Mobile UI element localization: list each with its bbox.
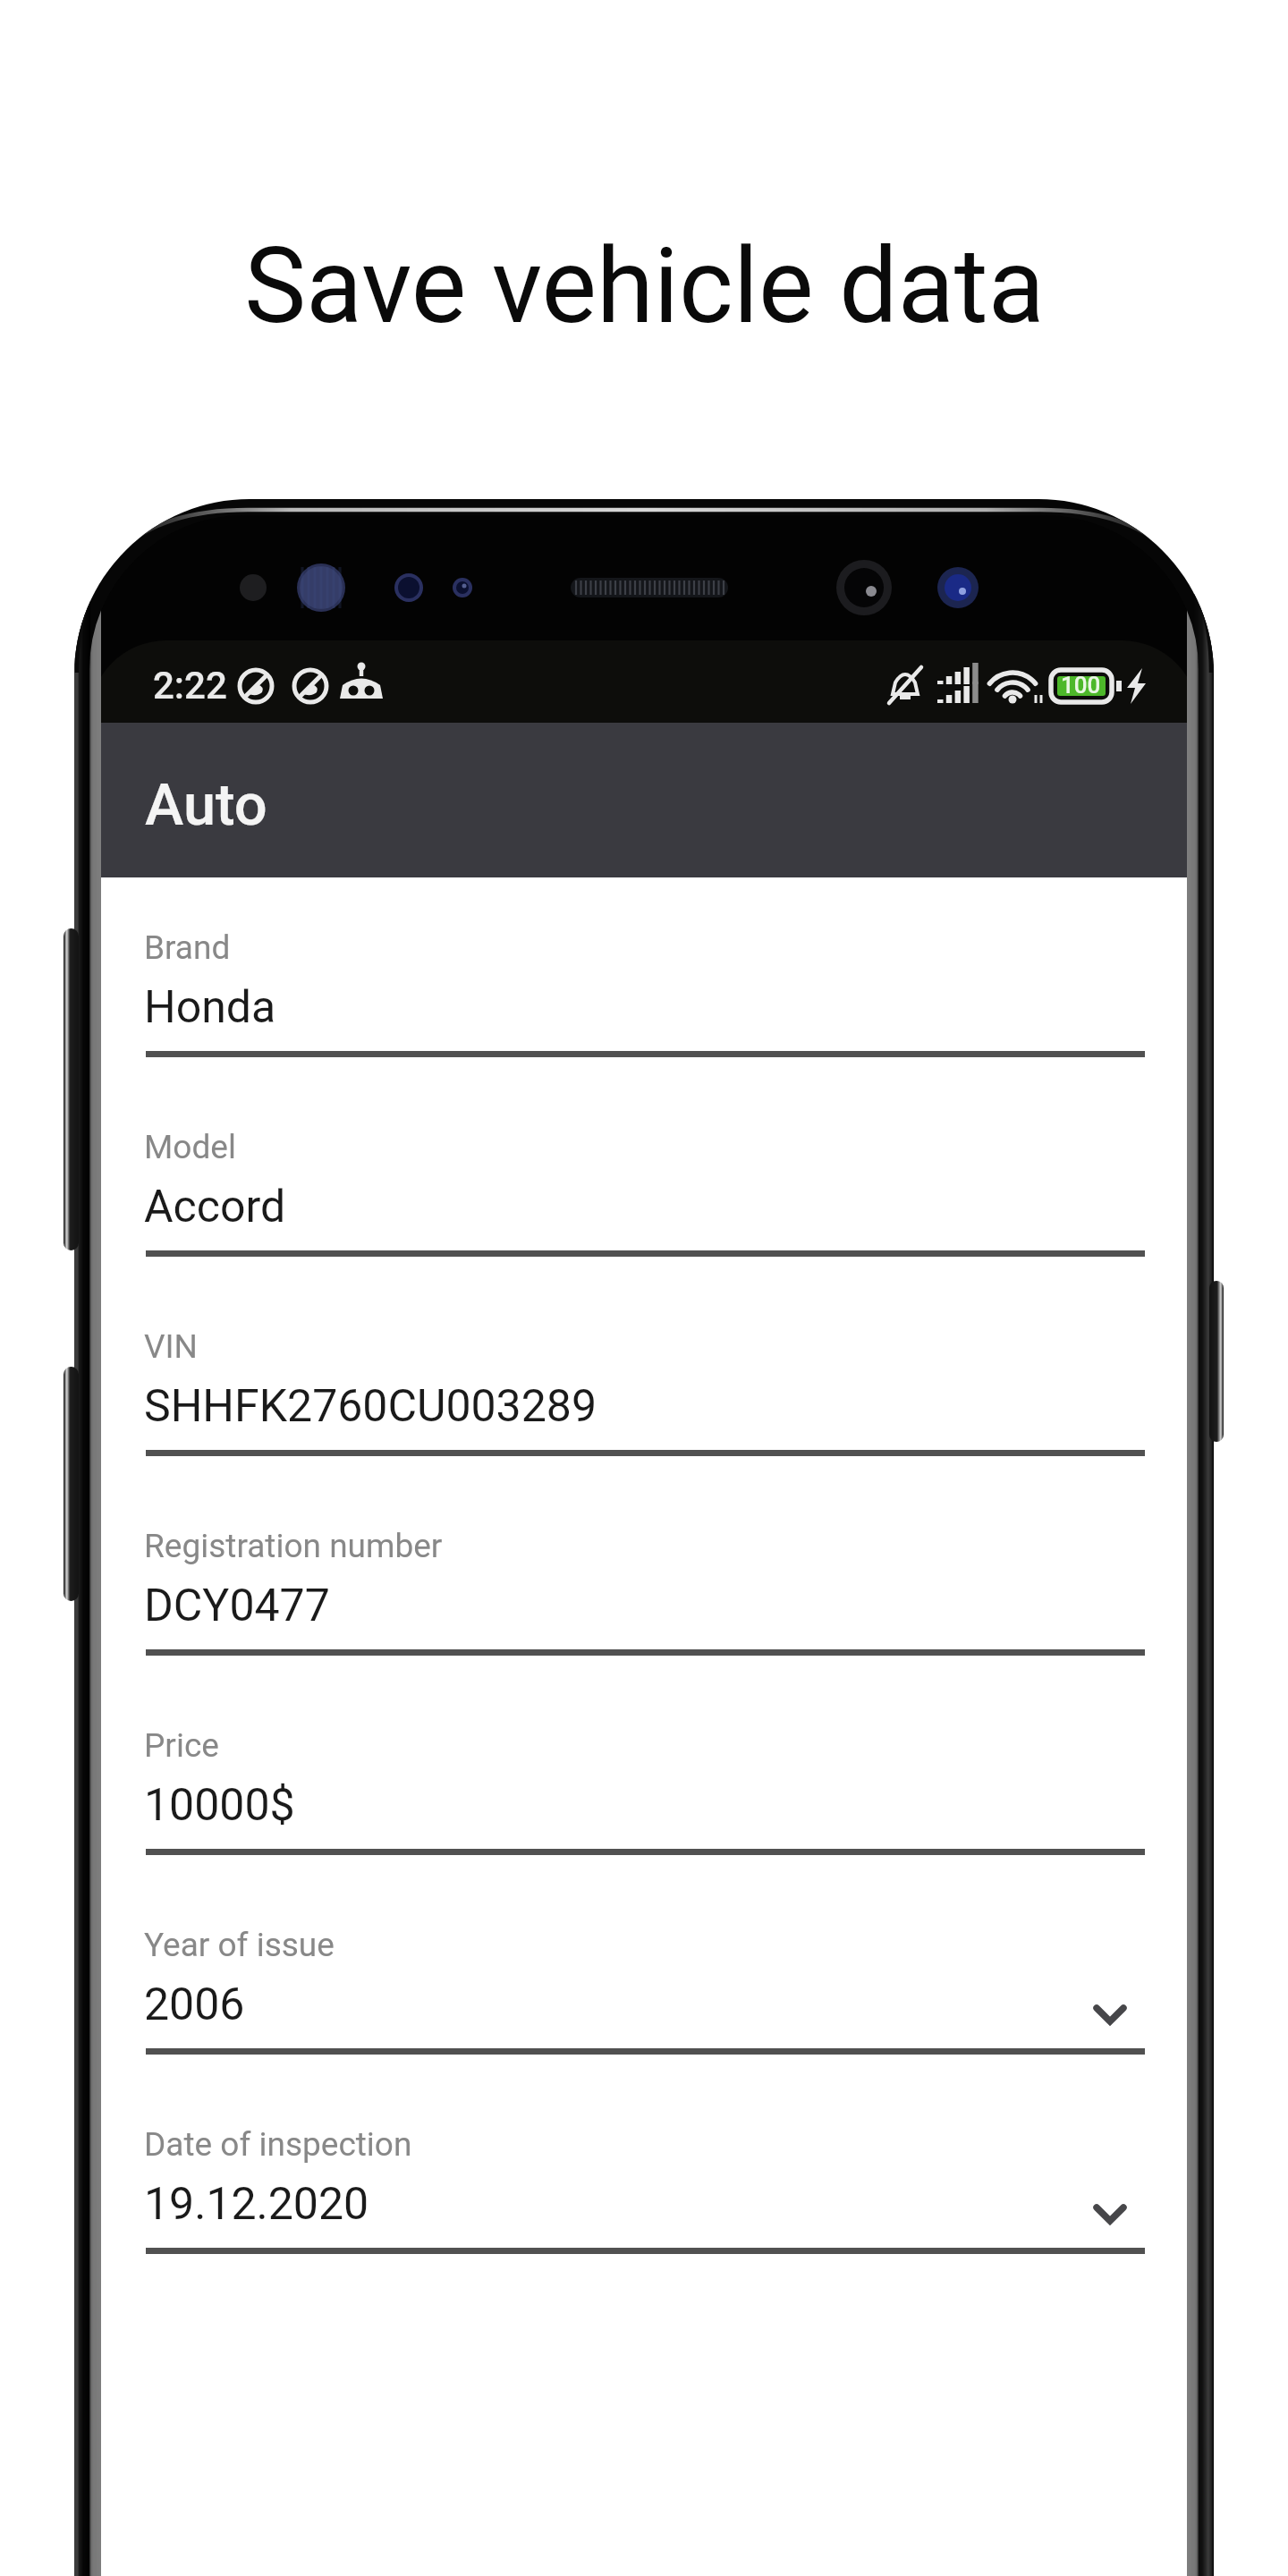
staticText: DCY0477 bbox=[144, 1580, 330, 1632]
staticText: Honda bbox=[144, 981, 276, 1034]
staticText: Save vehicle data bbox=[244, 225, 1045, 347]
button[interactable]: Price bbox=[146, 1675, 1145, 1875]
staticText: 2:22 bbox=[153, 664, 227, 708]
button[interactable]: Model bbox=[146, 1077, 1145, 1276]
staticText: 100 bbox=[1061, 672, 1101, 699]
button[interactable]: Registration number bbox=[146, 1476, 1145, 1675]
button[interactable]: Open Year of issue picker bbox=[1079, 1983, 1141, 2046]
button[interactable]: Open Date of inspection picker bbox=[1079, 2182, 1141, 2245]
staticText: VIN bbox=[144, 1327, 199, 1366]
staticText: Model bbox=[144, 1128, 236, 1166]
staticText: Accord bbox=[144, 1181, 286, 1233]
staticText: Auto bbox=[145, 771, 267, 839]
button[interactable]: Auto bbox=[89, 723, 1199, 877]
staticText: 19.12.2020 bbox=[144, 2178, 369, 2231]
button[interactable]: Year of issue bbox=[146, 1875, 1145, 2074]
staticText: Registration number bbox=[144, 1527, 443, 1565]
staticText: Year of issue bbox=[144, 1926, 335, 1964]
staticText: 2006 bbox=[144, 1979, 245, 2031]
button[interactable]: VIN bbox=[146, 1276, 1145, 1476]
staticText: Date of inspection bbox=[144, 2125, 412, 2164]
staticText: SHHFK2760CU003289 bbox=[144, 1380, 597, 1433]
staticText: 10000$ bbox=[144, 1779, 295, 1832]
staticText: Price bbox=[144, 1726, 219, 1765]
button[interactable]: Date of inspection bbox=[146, 2074, 1145, 2274]
button[interactable]: Brand bbox=[146, 877, 1145, 1077]
staticText: Brand bbox=[144, 928, 231, 967]
